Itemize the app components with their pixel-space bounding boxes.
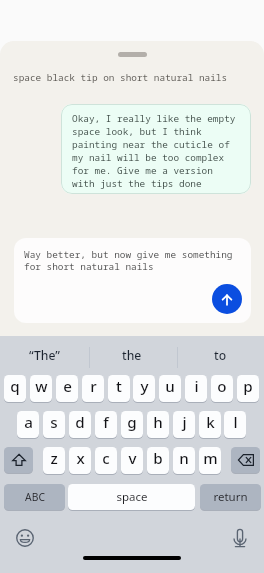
button[interactable]: n <box>173 447 195 474</box>
button[interactable]: g <box>121 411 143 438</box>
button[interactable]: h <box>147 411 169 438</box>
staticText: j <box>182 412 187 433</box>
staticText: return <box>213 489 248 505</box>
button[interactable]: space <box>68 484 195 510</box>
button[interactable]: p <box>237 375 259 402</box>
button[interactable]: b <box>147 447 169 474</box>
button[interactable]: the <box>88 336 176 375</box>
staticText: h <box>153 412 163 433</box>
staticText: x <box>76 448 85 469</box>
button[interactable]: x <box>69 447 91 474</box>
button[interactable]: d <box>69 411 91 438</box>
button[interactable]: k <box>199 411 221 438</box>
button[interactable]: “The” <box>0 336 88 375</box>
staticText: p <box>243 376 253 397</box>
button[interactable]: Emoji keyboard <box>16 529 34 547</box>
button[interactable]: Dictation <box>231 528 249 550</box>
button[interactable]: z <box>43 447 65 474</box>
button[interactable]: Send <box>212 284 242 314</box>
staticText: y <box>140 376 149 397</box>
button[interactable]: return <box>200 484 261 510</box>
staticText: the <box>122 347 142 364</box>
button[interactable]: u <box>159 375 181 402</box>
button[interactable]: o <box>211 375 233 402</box>
staticText: t <box>116 376 122 397</box>
staticText: l <box>233 412 238 433</box>
staticText: k <box>206 412 215 433</box>
staticText: to <box>214 347 227 364</box>
button[interactable]: r <box>82 375 104 402</box>
staticText: u <box>165 376 175 397</box>
button[interactable]: m <box>199 447 221 474</box>
button[interactable]: c <box>95 447 117 474</box>
staticText: w <box>35 376 48 397</box>
staticText: r <box>90 376 97 397</box>
staticText: i <box>194 376 199 397</box>
staticText: e <box>63 376 72 397</box>
button[interactable]: y <box>133 375 155 402</box>
button[interactable]: s <box>43 411 65 438</box>
staticText: q <box>10 376 20 397</box>
staticText: o <box>217 376 227 397</box>
staticText: d <box>75 412 85 433</box>
button[interactable]: f <box>95 411 117 438</box>
button[interactable]: q <box>4 375 26 402</box>
button[interactable]: to <box>176 336 264 375</box>
button[interactable]: v <box>121 447 143 474</box>
staticText: a <box>24 412 33 433</box>
staticText: s <box>50 412 58 433</box>
staticText: Okay, I really like the empty space look… <box>72 112 236 190</box>
button[interactable]: a <box>17 411 39 438</box>
button[interactable]: w <box>30 375 52 402</box>
staticText: “The” <box>29 347 60 364</box>
button[interactable]: e <box>56 375 78 402</box>
staticText: ABC <box>25 490 45 504</box>
staticText: m <box>203 448 218 469</box>
staticText: c <box>102 448 110 469</box>
button[interactable]: ABC <box>4 484 65 510</box>
staticText: n <box>179 448 189 469</box>
staticText: z <box>50 448 58 469</box>
button[interactable]: j <box>173 411 195 438</box>
staticText: v <box>128 448 137 469</box>
button[interactable]: l <box>224 411 246 438</box>
staticText: space black tip on short natural nails <box>13 71 228 84</box>
button[interactable]: i <box>185 375 207 402</box>
staticText: Way better, but now give me something fo… <box>24 248 233 273</box>
button[interactable]: t <box>108 375 130 402</box>
staticText: f <box>103 412 109 433</box>
button[interactable]: Shift <box>4 447 33 473</box>
staticText: b <box>153 448 163 469</box>
button[interactable]: Backspace <box>231 447 260 473</box>
staticText: space <box>116 489 148 505</box>
staticText: g <box>127 412 137 433</box>
